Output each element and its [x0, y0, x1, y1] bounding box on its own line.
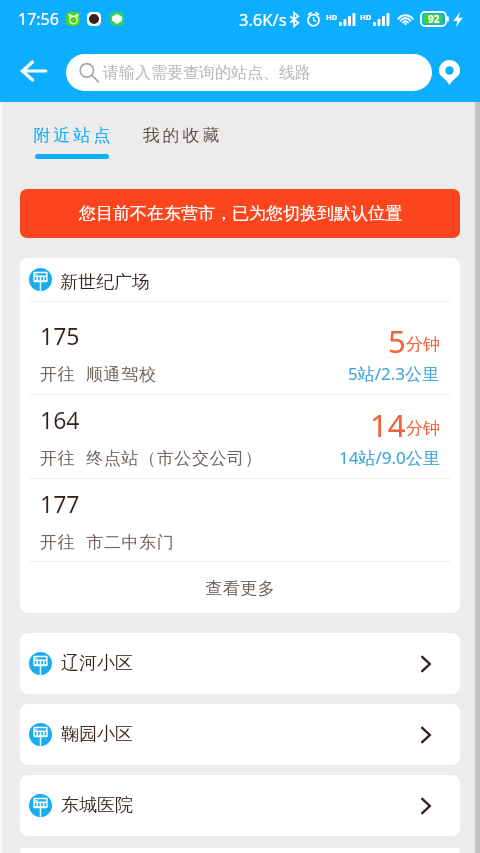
staticText: 我的收藏 — [141, 125, 221, 146]
staticText: 开往 — [40, 364, 76, 385]
staticText: 附近站点 — [32, 125, 112, 146]
staticText: 顺通驾校 — [86, 364, 157, 385]
button[interactable]: 175 — [20, 311, 460, 394]
staticText: 175 — [40, 320, 80, 351]
staticText: 查看更多 — [205, 578, 275, 599]
staticText: 5 — [388, 320, 406, 362]
button[interactable]: Back — [0, 43, 66, 102]
staticText: 14 — [370, 404, 406, 446]
staticText: 市二中东门 — [86, 532, 174, 553]
button[interactable]: 查看更多 — [20, 562, 460, 613]
staticText: 开往 — [40, 532, 76, 553]
staticText: 92 — [428, 12, 440, 26]
button[interactable]: 辽河小区 — [20, 633, 460, 694]
button[interactable]: Location — [427, 43, 471, 102]
staticText: 5站/2.3公里 — [348, 362, 440, 385]
button[interactable]: 鞠园小区 — [20, 704, 460, 765]
button[interactable]: 东城医院 — [20, 775, 460, 836]
staticText: 3.6K/s — [239, 8, 287, 30]
staticText: 开往 — [40, 448, 76, 469]
staticText: 新世纪广场 — [60, 271, 150, 294]
button[interactable]: 我的收藏 — [125, 102, 237, 146]
button[interactable]: 您目前不在东营市，已为您切换到默认位置 — [20, 189, 460, 238]
staticText: 177 — [40, 488, 80, 519]
staticText: 164 — [40, 404, 80, 435]
staticText: 请输入需要查询的站点、线路 — [103, 63, 311, 83]
staticText: HD — [326, 12, 338, 22]
staticText: 17:56 — [18, 8, 59, 30]
staticText: 终点站（市公交公司） — [86, 448, 262, 469]
staticText: 分钟 — [406, 334, 440, 355]
button[interactable]: 附近站点 — [19, 102, 125, 159]
staticText: 14站/9.0公里 — [339, 446, 440, 469]
button[interactable]: 新世纪广场 — [20, 258, 460, 301]
staticText: 东城医院 — [61, 794, 133, 817]
staticText: 分钟 — [406, 418, 440, 439]
staticText: 鞠园小区 — [61, 723, 133, 746]
button[interactable]: 请输入需要查询的站点、线路 — [66, 54, 432, 91]
button[interactable]: 177 — [20, 479, 460, 561]
button[interactable]: 164 — [20, 395, 460, 478]
staticText: HD — [360, 12, 372, 22]
staticText: 您目前不在东营市，已为您切换到默认位置 — [79, 203, 402, 224]
staticText: 辽河小区 — [61, 652, 133, 675]
